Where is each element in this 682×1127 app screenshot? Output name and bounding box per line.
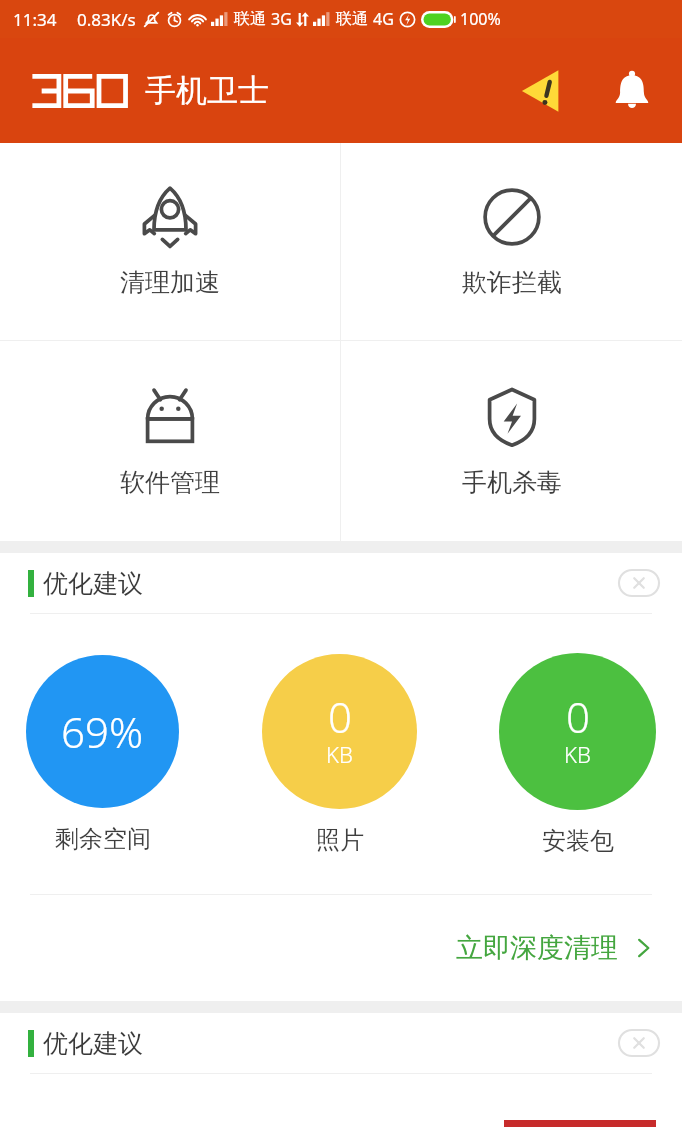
- staticText: 100%: [460, 8, 501, 30]
- button[interactable]: Notifications: [602, 61, 662, 121]
- staticText: 0: [566, 688, 590, 745]
- staticText: 0: [328, 688, 352, 745]
- button[interactable]: 69%: [26, 655, 179, 854]
- staticText: 联通: [234, 9, 266, 29]
- button[interactable]: 清理加速: [0, 143, 340, 340]
- staticText: 联通: [336, 9, 368, 29]
- button[interactable]: Close: [614, 565, 664, 601]
- staticText: 69%: [61, 703, 144, 760]
- button[interactable]: 手机杀毒: [341, 341, 682, 541]
- button[interactable]: 软件管理: [0, 341, 340, 541]
- staticText: 4G: [373, 8, 394, 30]
- staticText: 清理加速: [120, 267, 220, 298]
- staticText: KB: [326, 739, 353, 769]
- staticText: KB: [564, 739, 591, 769]
- button[interactable]: 0: [499, 653, 656, 856]
- staticText: 剩余空间: [55, 824, 151, 854]
- button[interactable]: Warning: [514, 61, 574, 121]
- staticText: 手机卫士: [145, 71, 269, 110]
- button[interactable]: 0: [262, 654, 417, 855]
- staticText: 照片: [316, 825, 364, 855]
- button[interactable]: Close: [614, 1025, 664, 1061]
- staticText: 0.83K/s: [77, 8, 136, 31]
- staticText: 立即深度清理: [456, 931, 618, 965]
- staticText: 欺诈拦截: [462, 267, 562, 298]
- staticText: 3G: [271, 8, 292, 30]
- staticText: 11:34: [13, 8, 57, 31]
- staticText: 优化建议: [43, 568, 143, 599]
- staticText: 手机杀毒: [462, 467, 562, 498]
- staticText: 安装包: [542, 826, 614, 856]
- staticText: 软件管理: [120, 467, 220, 498]
- button[interactable]: 欺诈拦截: [341, 143, 682, 340]
- staticText: 优化建议: [43, 1028, 143, 1059]
- button[interactable]: 立即深度清理: [0, 895, 682, 1001]
